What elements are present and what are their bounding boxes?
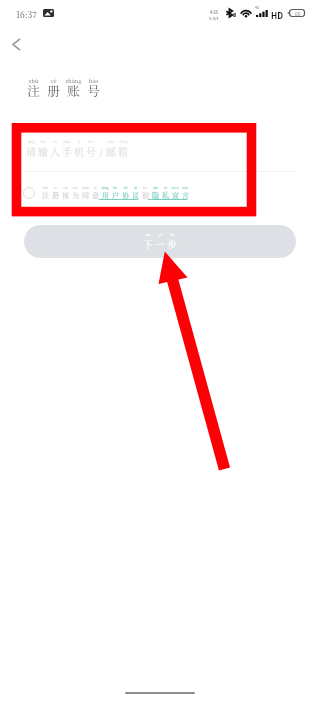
staticText: 号 [86,144,96,158]
staticText: 4.65 [210,9,219,15]
staticText: 注 [27,82,40,100]
staticText: wéi [72,186,78,190]
staticText: 账 [67,82,80,100]
staticText: xié [123,186,128,190]
staticText: 箱 [118,144,128,158]
staticText: 一 [155,237,165,251]
staticText: hù [113,186,117,190]
button[interactable]: xià [24,225,296,258]
staticText: 隐 [152,190,159,200]
staticText: xuān [171,186,179,190]
staticText: zhù [28,77,39,85]
staticText: 言 [182,190,189,200]
staticText: 邮 [106,144,116,158]
staticText: zhù [42,186,48,190]
staticText: rù [53,140,57,144]
staticText: zhàng [65,77,82,85]
staticText: tóng [82,186,89,190]
staticText: yì [134,186,137,190]
staticText: 号 [87,82,100,100]
staticText: 5.5/s [209,15,219,21]
button[interactable]: Back [2,30,30,58]
staticText: yī [158,232,162,237]
staticText: yóu [108,140,114,144]
staticText: 议 [132,190,139,200]
staticText: shū [40,140,46,144]
staticText: yǐn [153,186,158,190]
staticText: 协 [122,190,129,200]
staticText: 私 [162,190,169,200]
staticText: xiāng [119,140,128,144]
staticText: 同 [82,190,89,200]
staticText: 输 [38,144,48,158]
staticText: yòng [101,186,109,190]
staticText: 4G [255,5,260,10]
staticText: 意 [92,190,99,200]
staticText: 请 [26,144,36,158]
staticText: 视 [62,190,69,200]
staticText: 和 [142,190,149,200]
staticText: xià [145,232,151,237]
staticText: hé [143,186,147,190]
staticText: hào [88,140,94,144]
staticText: yán [182,186,188,190]
other: Agree to terms [23,187,35,199]
staticText: 册 [52,190,59,200]
staticText: 入 [50,144,60,158]
staticText: cè [53,186,57,190]
staticText: 65 [295,10,301,17]
staticText: 16:37 [16,8,37,20]
staticText: 步 [167,237,177,251]
staticText: cè [50,77,57,85]
staticText: yì [94,186,97,190]
staticText: 注 [42,190,49,200]
staticText: jī [78,140,80,144]
staticText: sī [164,186,167,190]
staticText: 机 [74,144,84,158]
staticText: 用 [102,190,109,200]
staticText: 宣 [172,190,179,200]
staticText: 为 [72,190,79,200]
staticText: 户 [112,190,119,200]
staticText: 下 [143,237,153,251]
staticText: 册 [47,82,60,100]
staticText: HD [271,9,284,21]
staticText: hào [88,77,99,85]
staticText: / [99,144,103,158]
staticText: bù [170,232,175,237]
staticText: shǒu [63,140,71,144]
staticText: qǐng [28,140,35,144]
staticText: 手 [62,144,72,158]
staticText: shì [63,186,68,190]
button[interactable]: Agree to terms [23,186,190,200]
